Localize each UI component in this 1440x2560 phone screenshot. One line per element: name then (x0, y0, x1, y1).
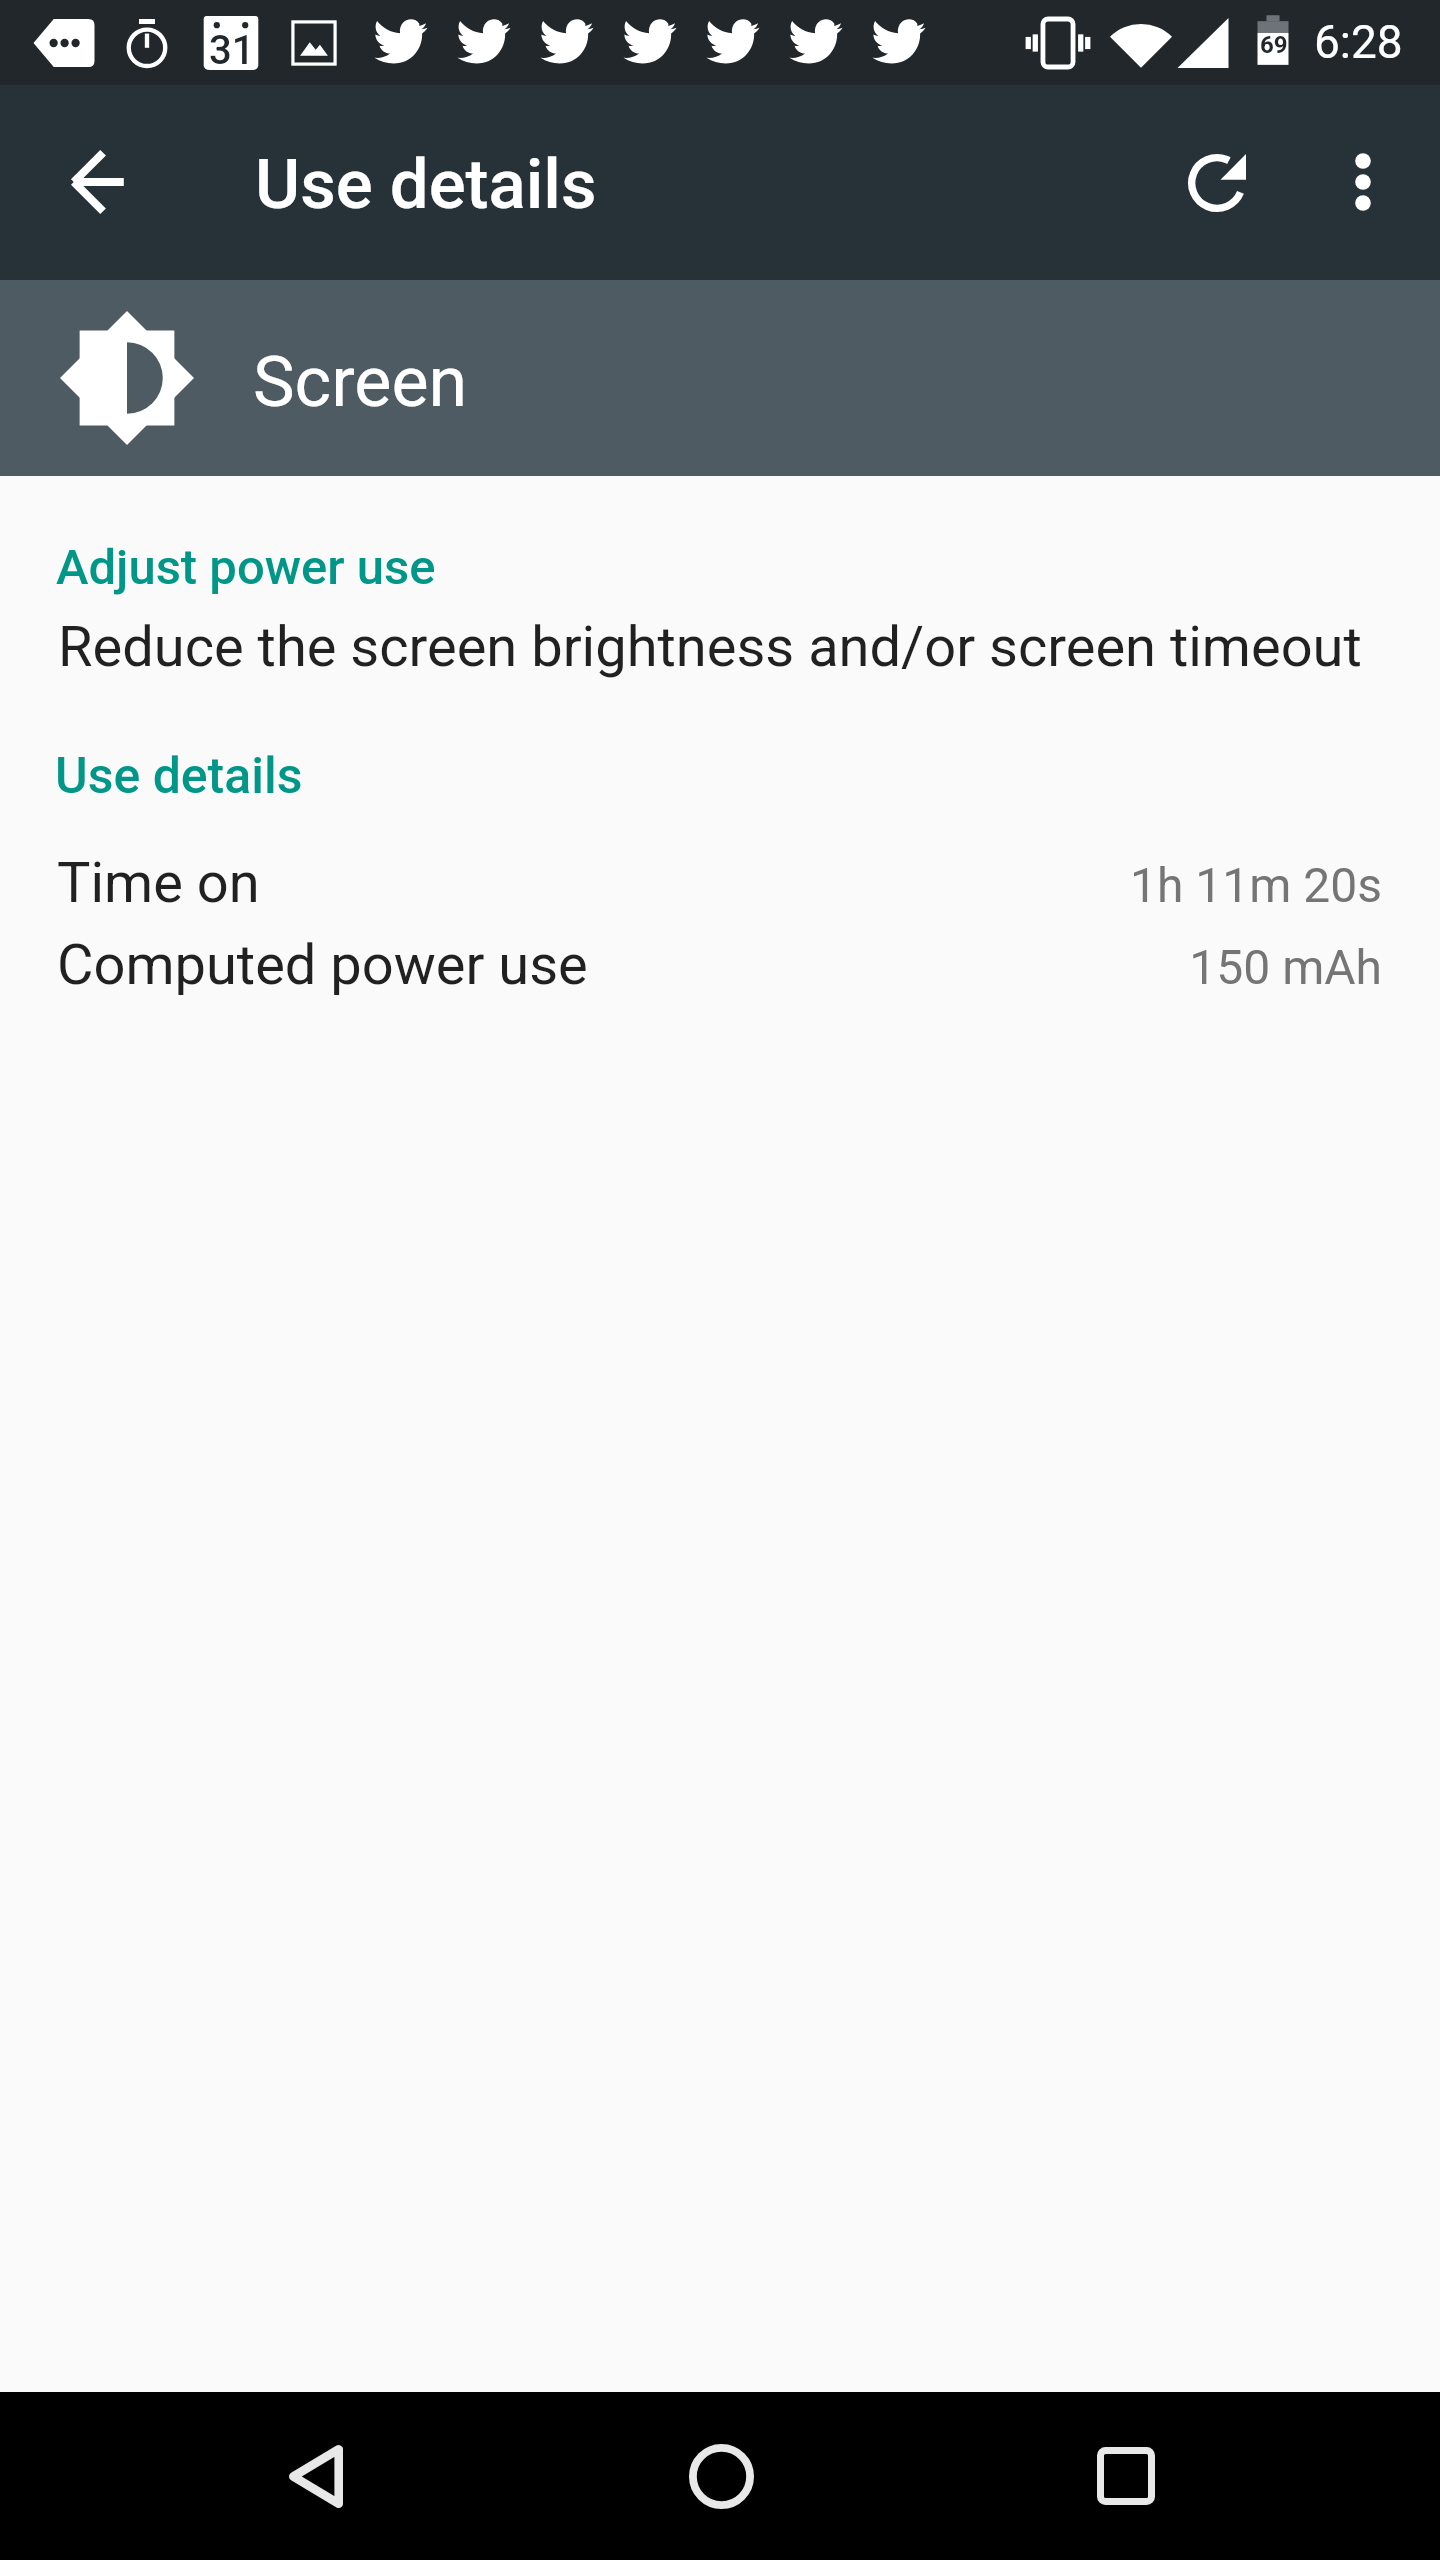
staticText: 31 (209, 27, 255, 74)
staticText: 1h 11m 20s (0, 857, 1382, 913)
staticText: 6:28 (1314, 15, 1403, 69)
button[interactable]: Home (601, 2392, 841, 2560)
button[interactable]: Refresh (1144, 110, 1289, 255)
button[interactable]: Navigate up (26, 110, 170, 254)
staticText: Time on (57, 850, 260, 916)
button[interactable]: More options (1291, 110, 1435, 254)
button[interactable]: Computed power use (0, 921, 1440, 1002)
button[interactable]: Back (196, 2392, 436, 2560)
staticText: Computed power use (57, 932, 588, 998)
button[interactable]: Recent apps (1006, 2392, 1246, 2560)
staticText: Use details (55, 747, 303, 806)
button[interactable]: Adjust power use (0, 504, 1440, 664)
staticText: 69 (1260, 31, 1288, 59)
staticText: Adjust power use (56, 539, 436, 596)
button[interactable]: Time on (0, 839, 1440, 920)
staticText: Screen (253, 341, 468, 423)
staticText: Use details (255, 144, 597, 225)
staticText: Reduce the screen brightness and/or scre… (58, 614, 1362, 680)
staticText: 150 mAh (0, 939, 1382, 995)
